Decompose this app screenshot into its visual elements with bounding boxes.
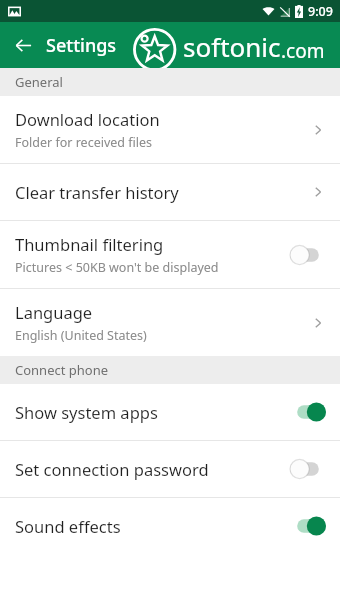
button[interactable]: Sound effects [0, 498, 340, 554]
staticText: English (United States) [15, 327, 147, 344]
button[interactable]: On [290, 400, 326, 424]
button[interactable]: Clear transfer history [0, 164, 340, 220]
staticText: softonic [183, 29, 281, 64]
staticText: Download location [15, 108, 160, 130]
staticText: Clear transfer history [15, 181, 179, 203]
staticText: 9:09 [308, 3, 333, 20]
staticText: Show system apps [15, 401, 158, 423]
button[interactable]: Show system apps [0, 384, 340, 440]
staticText: Folder for received files [15, 134, 153, 151]
staticText: Sound effects [15, 515, 121, 537]
staticText: Language [15, 301, 93, 323]
button[interactable]: Off [290, 457, 326, 481]
button[interactable]: On [290, 514, 326, 538]
staticText: .com [281, 38, 325, 64]
button[interactable]: Thumbnail filtering [0, 221, 340, 288]
staticText: Settings [46, 33, 117, 58]
button[interactable]: Download location [0, 96, 340, 163]
staticText: Thumbnail filtering [15, 233, 164, 255]
button[interactable]: Back [0, 22, 46, 68]
staticText: Set connection password [15, 458, 209, 480]
button[interactable]: Off [290, 243, 326, 267]
staticText: Connect phone [15, 361, 109, 379]
button[interactable]: Language [0, 289, 340, 356]
staticText: Pictures < 50KB won't be displayed [15, 259, 219, 276]
staticText: General [15, 73, 63, 91]
button[interactable]: Set connection password [0, 441, 340, 497]
